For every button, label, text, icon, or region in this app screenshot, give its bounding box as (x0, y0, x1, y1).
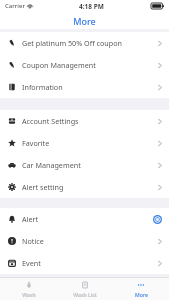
staticText: Carrier (5, 2, 25, 10)
button[interactable]: Favorite (0, 132, 169, 154)
staticText: Wash (22, 291, 36, 298)
button[interactable]: Notice (0, 230, 169, 252)
button[interactable]: Information (0, 76, 169, 98)
button[interactable]: Alert (0, 208, 169, 230)
button[interactable]: Coupon Management (0, 54, 169, 76)
staticText: More (73, 15, 96, 27)
staticText: Notice (22, 236, 44, 246)
button[interactable]: Wash List (57, 278, 113, 300)
button[interactable]: Car Management (0, 154, 169, 176)
staticText: Alert (22, 214, 39, 224)
staticText: Car Management (22, 160, 81, 170)
button[interactable]: Wash (0, 278, 57, 300)
staticText: Information (22, 82, 63, 92)
staticText: Alert setting (22, 182, 64, 192)
button[interactable]: Alert setting (0, 176, 169, 198)
staticText: More (135, 291, 148, 298)
staticText: Get platinum 50% Off coupon (22, 38, 122, 48)
staticText: Wash List (73, 291, 97, 298)
button[interactable]: Event (0, 252, 169, 274)
staticText: 4:18 PM (79, 2, 104, 11)
staticText: Coupon Management (22, 60, 96, 70)
button[interactable]: Get platinum 50% Off coupon (0, 32, 169, 54)
button[interactable]: More (113, 278, 169, 300)
staticText: Account Settings (22, 116, 79, 126)
staticText: Event (22, 258, 41, 268)
staticText: Favorite (22, 138, 50, 148)
button[interactable]: Account Settings (0, 110, 169, 132)
